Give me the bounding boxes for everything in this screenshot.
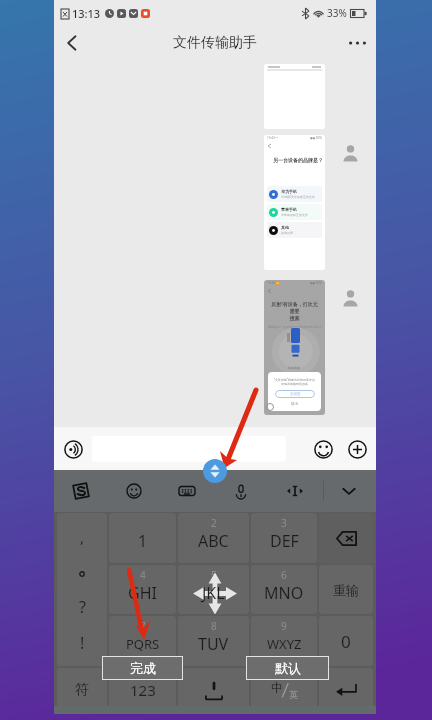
staticText: ●● 80%	[310, 281, 322, 285]
button[interactable]: 8	[178, 616, 249, 666]
staticText: 1	[138, 530, 148, 552]
staticText: 13:13	[72, 6, 101, 21]
button[interactable]: 19:44 ••	[264, 135, 325, 270]
staticText: 去设置	[290, 392, 301, 396]
staticText: 请确保另一台设备已开启无线网络与蓝牙	[264, 325, 325, 329]
button[interactable]	[92, 436, 286, 462]
staticText: !	[80, 632, 85, 654]
staticText: 6	[281, 568, 287, 582]
staticText: WXYZ	[267, 635, 302, 653]
staticText: 符	[75, 681, 89, 699]
button[interactable]: Voice input	[214, 470, 268, 512]
button[interactable]: 1	[109, 513, 176, 563]
staticText: 与苹果设备互传文件	[281, 213, 308, 217]
button[interactable]: Resize keyboard	[203, 459, 227, 483]
staticText: MNO	[264, 582, 304, 604]
button[interactable]: Enter	[319, 668, 373, 711]
staticText: 8	[211, 619, 217, 633]
button[interactable]: Emoji	[306, 432, 340, 466]
staticText: 2	[211, 516, 217, 530]
button[interactable]	[264, 64, 325, 129]
button[interactable]: 完成	[102, 656, 183, 680]
button[interactable]: Voice input	[56, 432, 90, 466]
button[interactable]: Keyboard layout	[160, 470, 214, 512]
staticText: 与鸿蒙/安卓设备互传文件	[281, 195, 316, 199]
button[interactable]: 符	[57, 668, 107, 711]
staticText: 文件传输助手	[173, 34, 257, 52]
staticText: 默认	[275, 660, 301, 676]
staticText: ?	[79, 596, 86, 618]
staticText: “文件传输”想要访问您的蓝牙以发现并连接附近设备	[273, 378, 316, 386]
button[interactable]: Hide keyboard	[322, 470, 376, 512]
staticText: 反射!有设备，打次元需要 搜索	[270, 301, 319, 322]
button[interactable]: 3	[251, 513, 317, 563]
staticText: 等待连接	[288, 366, 300, 370]
button[interactable]: Add	[340, 432, 374, 466]
staticText: 其他品牌	[281, 231, 293, 235]
staticText: ●● 80%	[310, 136, 322, 140]
button[interactable]: Back	[54, 26, 90, 60]
staticText: 7	[140, 619, 146, 633]
staticText: 华为手机	[281, 189, 297, 194]
button[interactable]: 7	[109, 616, 176, 666]
staticText: 其他	[281, 225, 289, 230]
staticText: ,	[80, 527, 85, 547]
button[interactable]: 4	[109, 565, 176, 614]
button[interactable]: Move cursor	[268, 470, 322, 512]
staticText: DEF	[270, 530, 299, 552]
staticText: 0	[341, 630, 351, 653]
button[interactable]: Input method	[54, 470, 107, 512]
button[interactable]: Emoji	[107, 470, 160, 512]
button[interactable]: 123	[109, 668, 176, 711]
button[interactable]: 2	[178, 513, 249, 563]
staticText: ABC	[198, 530, 229, 552]
button[interactable]: 9	[251, 616, 317, 666]
staticText: 33%	[327, 6, 347, 20]
staticText: PQRS	[126, 635, 160, 653]
button[interactable]: Backspace	[319, 513, 373, 563]
staticText: 9	[281, 619, 287, 633]
staticText: JKL	[202, 582, 225, 604]
staticText: 中	[271, 680, 283, 695]
staticText: 4	[140, 568, 146, 582]
staticText: 19:44 ••	[267, 136, 278, 140]
staticText: 另一台设备的品牌是？	[273, 157, 323, 163]
staticText: 苹果手机	[281, 207, 297, 212]
staticText: 重输	[333, 582, 359, 598]
staticText: 取消	[291, 402, 298, 406]
button[interactable]: ,	[57, 513, 107, 666]
button[interactable]: 6	[251, 565, 317, 614]
staticText: TUV	[198, 633, 229, 655]
staticText: 完成	[130, 660, 156, 676]
staticText: 123	[130, 680, 156, 700]
button[interactable]: 19:44 📶	[264, 280, 325, 415]
button[interactable]: More options	[338, 26, 376, 60]
button[interactable]: Voice input	[178, 668, 249, 711]
staticText: 3	[281, 516, 287, 530]
button[interactable]: 重输	[319, 565, 373, 614]
staticText: 19:44 📶	[267, 281, 280, 285]
button[interactable]: 5	[178, 565, 249, 614]
button[interactable]: 中	[251, 668, 317, 711]
staticText: 5	[211, 568, 217, 582]
button[interactable]: 0	[319, 616, 373, 666]
staticText: 英	[289, 689, 298, 700]
button[interactable]: 默认	[246, 656, 329, 680]
staticText: GHI	[128, 582, 157, 604]
